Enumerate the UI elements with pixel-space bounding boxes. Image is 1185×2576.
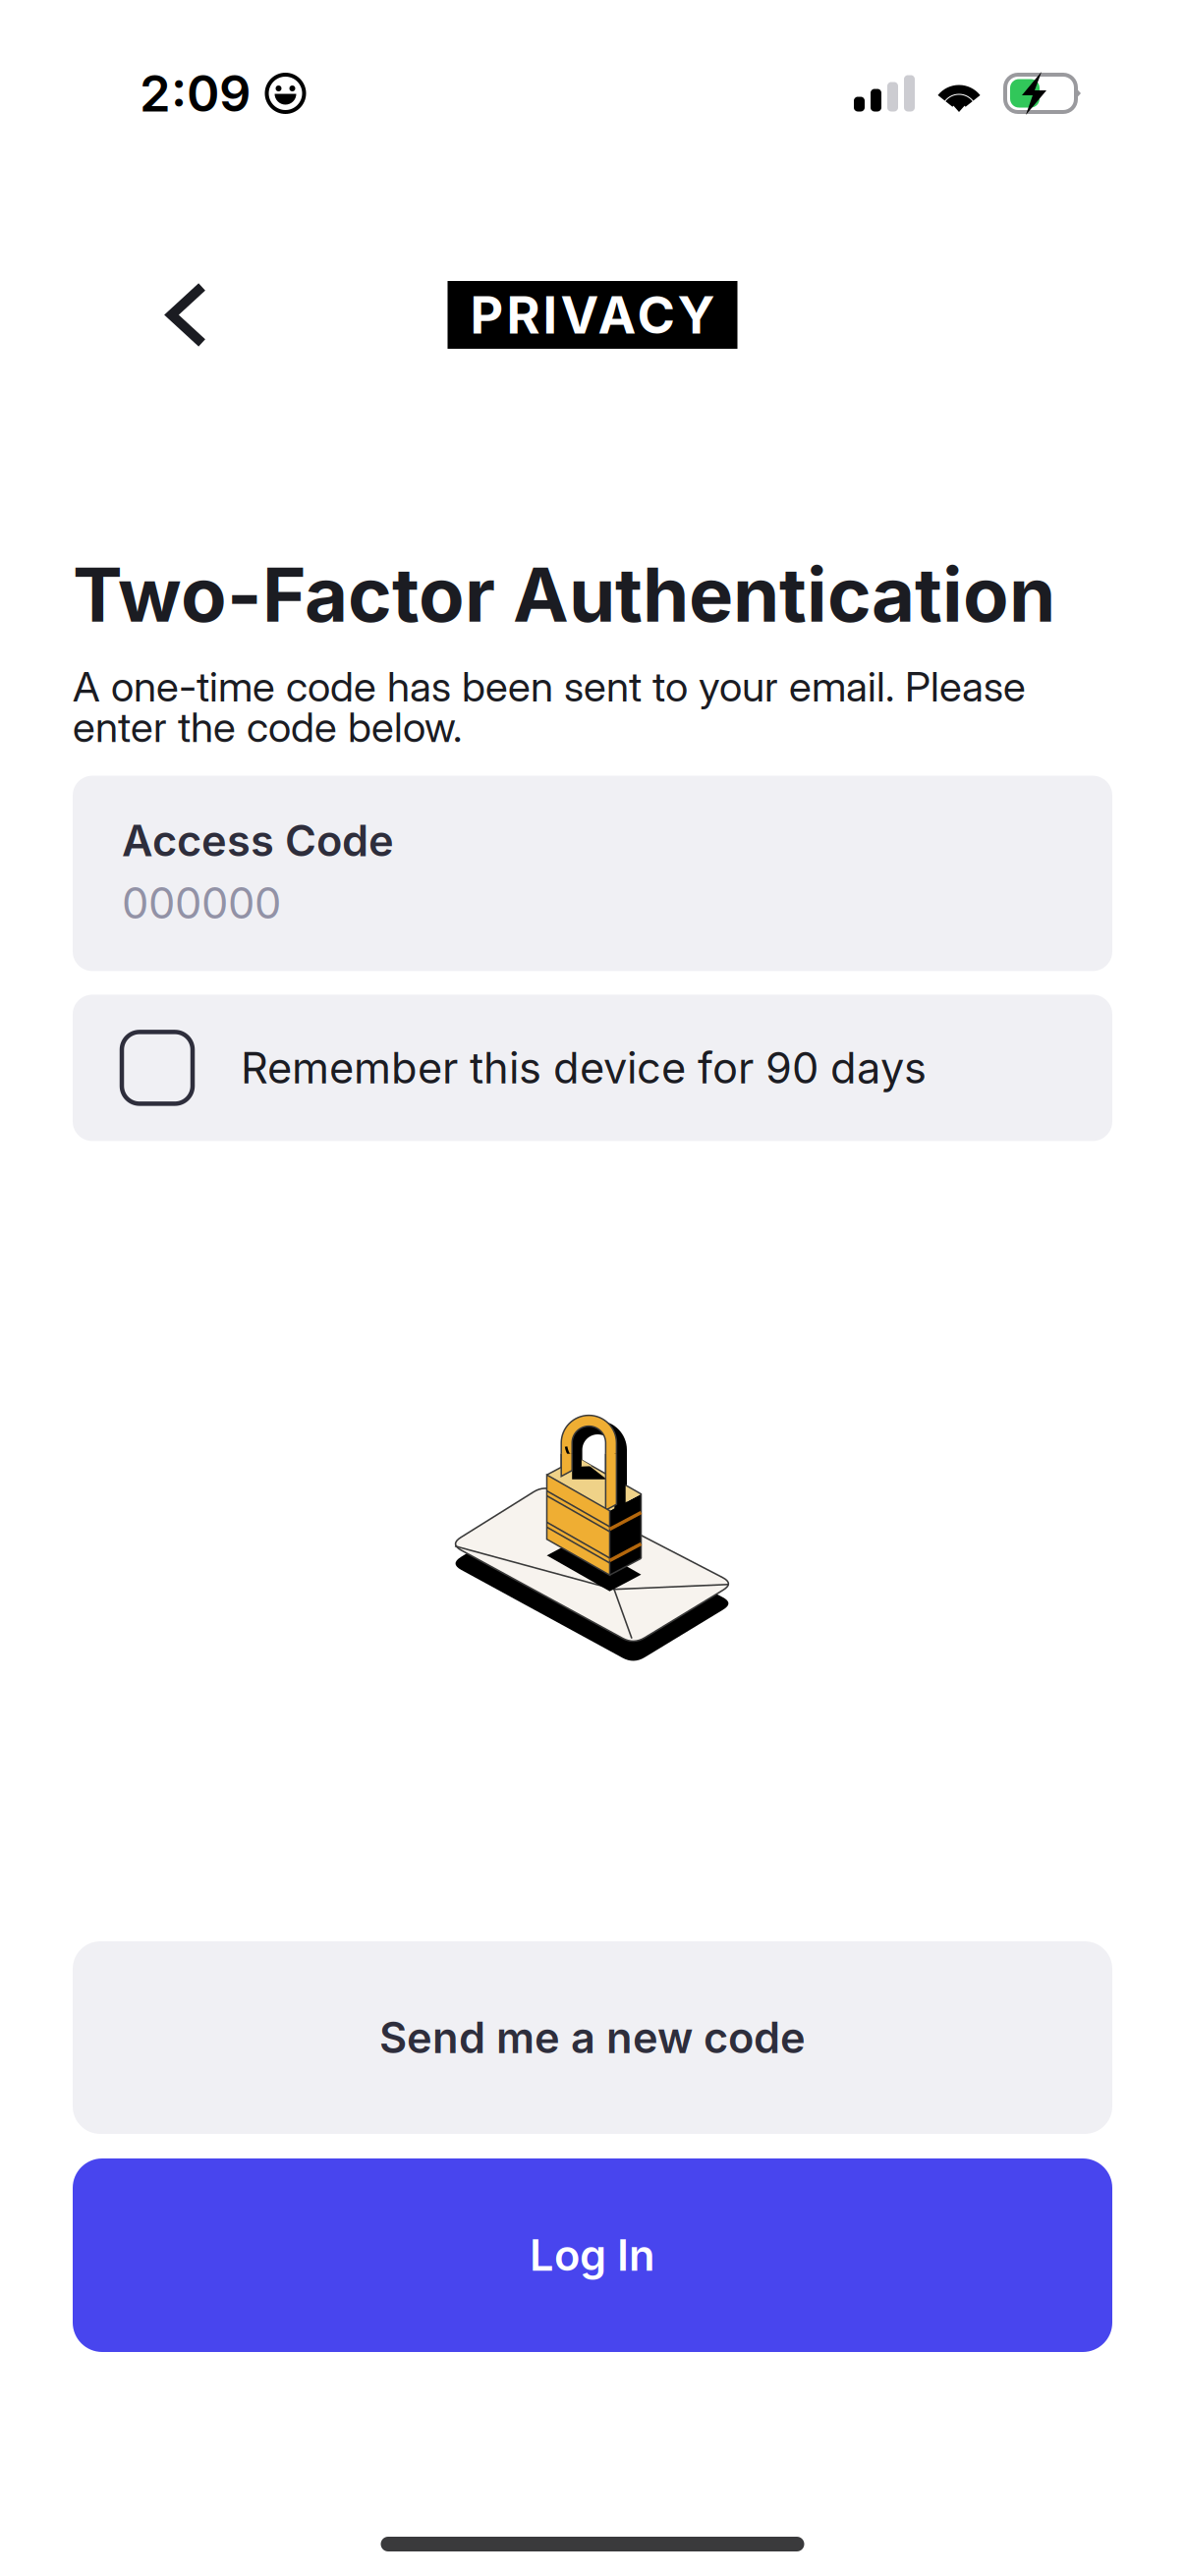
staticText: PRIVACY [470, 284, 715, 346]
staticText: Access Code [122, 815, 394, 866]
button[interactable]: Log In [73, 2158, 1112, 2352]
staticText: 2:09 [140, 63, 251, 123]
staticText: A one-time code has been sent to your em… [73, 666, 1026, 747]
staticText: Remember this device for 90 days [241, 1042, 927, 1094]
staticText: Log In [530, 2229, 655, 2281]
staticText: 000000 [122, 877, 281, 929]
staticText: Send me a new code [379, 2012, 806, 2063]
button[interactable]: Back [145, 281, 228, 349]
button[interactable]: Send me a new code [73, 1941, 1112, 2134]
staticText: Two-Factor Authentication [73, 549, 1055, 640]
button[interactable]: Remember this device for 90 days [73, 995, 1112, 1141]
